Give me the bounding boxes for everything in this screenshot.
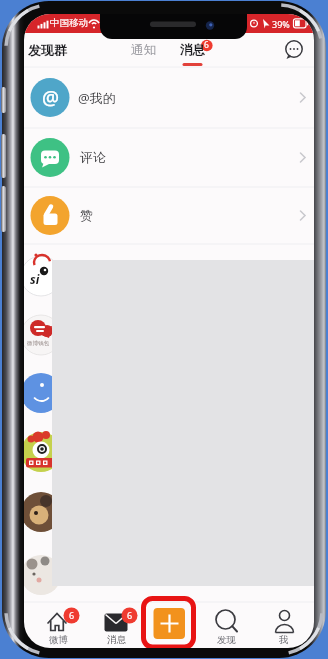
button[interactable] <box>28 602 86 648</box>
button[interactable] <box>24 33 94 67</box>
button[interactable] <box>280 34 310 64</box>
button[interactable] <box>124 33 164 67</box>
button[interactable] <box>153 608 185 639</box>
staticText: 我 <box>279 634 289 646</box>
staticText: @我的 <box>78 89 116 107</box>
staticText: 6 <box>204 39 209 51</box>
staticText: 消息 <box>180 42 205 58</box>
staticText: 发现 <box>217 634 236 646</box>
button[interactable] <box>197 602 255 648</box>
button[interactable] <box>255 602 313 648</box>
staticText: 6 <box>127 609 133 621</box>
button[interactable] <box>24 187 314 244</box>
button[interactable] <box>24 67 314 128</box>
staticText: 消息 <box>107 634 126 646</box>
staticText: @ <box>42 85 60 111</box>
staticText: 微博钱包 <box>27 340 49 347</box>
staticText: 39% <box>272 18 290 30</box>
staticText: si <box>30 271 40 287</box>
button[interactable] <box>24 128 314 187</box>
staticText: 微博 <box>49 634 68 646</box>
staticText: 评论 <box>80 149 106 165</box>
staticText: 6 <box>69 609 75 621</box>
staticText: 发现群 <box>28 42 67 58</box>
staticText: 通知 <box>131 42 156 58</box>
staticText: 中国移动 <box>50 17 88 29</box>
button[interactable] <box>172 33 216 67</box>
staticText: 赞 <box>80 207 93 223</box>
button[interactable] <box>87 602 145 648</box>
